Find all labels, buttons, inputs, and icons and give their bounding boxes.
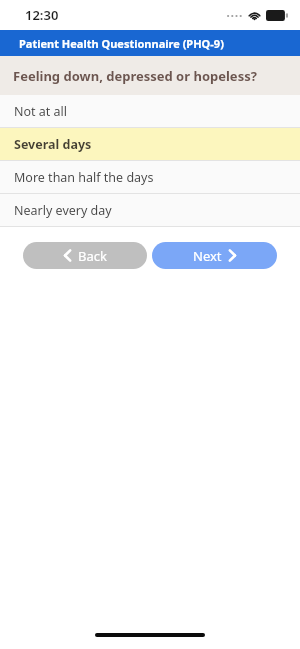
button[interactable]: Next xyxy=(152,242,277,269)
staticText: More than half the days xyxy=(14,169,154,186)
other: Next xyxy=(228,249,237,262)
button[interactable]: Back xyxy=(23,242,147,269)
button[interactable]: Nearly every day xyxy=(0,194,300,227)
staticText: Patient Health Questionnaire (PHQ-9) xyxy=(19,36,224,51)
staticText: Nearly every day xyxy=(14,202,112,219)
staticText: Several days xyxy=(14,136,92,153)
staticText: Feeling down, depressed or hopeless? xyxy=(13,67,257,85)
staticText: Not at all xyxy=(14,103,68,120)
button[interactable]: Several days xyxy=(0,128,300,161)
staticText: 12:30 xyxy=(25,6,59,24)
button[interactable]: Not at all xyxy=(0,95,300,128)
other: Back xyxy=(63,249,72,262)
button[interactable]: Patient Health Questionnaire (PHQ-9) xyxy=(0,30,300,56)
staticText: Back xyxy=(78,247,107,265)
staticText: Next xyxy=(193,247,222,265)
button[interactable]: More than half the days xyxy=(0,161,300,194)
